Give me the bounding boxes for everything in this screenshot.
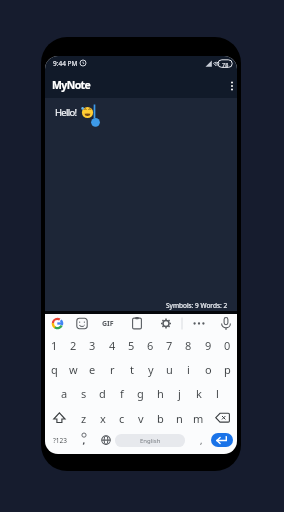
button[interactable]: 8 bbox=[179, 333, 198, 357]
button[interactable]: h bbox=[151, 381, 170, 405]
staticText: 6 bbox=[147, 338, 154, 353]
button[interactable]: x bbox=[93, 406, 112, 430]
staticText: Hello! bbox=[55, 106, 77, 119]
button[interactable]: y bbox=[141, 357, 160, 381]
button[interactable] bbox=[73, 314, 91, 333]
staticText: q bbox=[51, 362, 58, 377]
button[interactable]: k bbox=[189, 381, 208, 405]
button[interactable]: 9 bbox=[199, 333, 218, 357]
staticText: b bbox=[157, 411, 164, 426]
staticText: 4 bbox=[109, 338, 116, 353]
button[interactable] bbox=[128, 314, 146, 333]
button[interactable]: l bbox=[208, 381, 227, 405]
staticText: w bbox=[69, 362, 78, 377]
button[interactable]: q bbox=[45, 357, 64, 381]
button[interactable]: English bbox=[115, 434, 185, 447]
staticText: d bbox=[99, 386, 106, 401]
button[interactable]: c bbox=[112, 406, 131, 430]
staticText: u bbox=[166, 362, 173, 377]
staticText: e bbox=[89, 362, 96, 377]
button[interactable]: 7 bbox=[160, 333, 179, 357]
staticText: 9:44 PM bbox=[53, 59, 78, 68]
staticText: m bbox=[193, 411, 204, 426]
button[interactable]: o bbox=[199, 357, 218, 381]
button[interactable] bbox=[157, 314, 175, 333]
button[interactable] bbox=[49, 314, 67, 333]
staticText: z bbox=[81, 411, 87, 426]
button[interactable]: 4 bbox=[103, 333, 122, 357]
staticText: r bbox=[110, 362, 115, 377]
staticText: i bbox=[187, 362, 190, 377]
button[interactable]: , bbox=[192, 428, 211, 452]
button[interactable]: n bbox=[170, 406, 189, 430]
staticText: 3 bbox=[89, 338, 96, 353]
button[interactable]: r bbox=[103, 357, 122, 381]
staticText: MyNote bbox=[52, 78, 91, 92]
button[interactable]: e bbox=[83, 357, 102, 381]
button[interactable]: f bbox=[112, 381, 131, 405]
button[interactable]: j bbox=[170, 381, 189, 405]
staticText: y bbox=[148, 362, 154, 377]
staticText: 78 bbox=[222, 61, 229, 68]
button[interactable]: 5 bbox=[122, 333, 141, 357]
button[interactable]: p bbox=[218, 357, 237, 381]
button[interactable]: u bbox=[160, 357, 179, 381]
button[interactable]: ?123 bbox=[45, 428, 74, 452]
button[interactable] bbox=[45, 98, 237, 311]
button[interactable]: w bbox=[64, 357, 83, 381]
button[interactable]: b bbox=[151, 406, 170, 430]
staticText: g bbox=[137, 386, 144, 401]
button[interactable]: 3 bbox=[83, 333, 102, 357]
button[interactable]: g bbox=[131, 381, 150, 405]
button[interactable]: z bbox=[74, 406, 93, 430]
staticText: o bbox=[205, 362, 212, 377]
button[interactable]: 0 bbox=[218, 333, 237, 357]
button[interactable]: 6 bbox=[141, 333, 160, 357]
staticText: 2 bbox=[70, 338, 77, 353]
button[interactable]: 2 bbox=[64, 333, 83, 357]
staticText: j bbox=[178, 386, 181, 401]
staticText: 5 bbox=[128, 338, 135, 353]
staticText: l bbox=[216, 386, 219, 401]
staticText: 1 bbox=[51, 338, 58, 353]
button[interactable] bbox=[93, 428, 112, 452]
staticText: x bbox=[100, 411, 106, 426]
staticText: GIF bbox=[102, 319, 114, 329]
staticText: 9 bbox=[205, 338, 212, 353]
staticText: f bbox=[120, 386, 124, 401]
staticText: n bbox=[176, 411, 183, 426]
button[interactable] bbox=[99, 314, 117, 333]
button[interactable]: d bbox=[93, 381, 112, 405]
staticText: a bbox=[61, 386, 68, 401]
staticText: v bbox=[138, 411, 144, 426]
staticText: k bbox=[196, 386, 202, 401]
staticText: p bbox=[224, 362, 231, 377]
staticText: , bbox=[200, 434, 203, 446]
staticText: t bbox=[130, 362, 134, 377]
button[interactable]: t bbox=[122, 357, 141, 381]
staticText: 7 bbox=[166, 338, 173, 353]
button[interactable]: 1 bbox=[45, 333, 64, 357]
button[interactable]: v bbox=[131, 406, 150, 430]
staticText: 0 bbox=[224, 338, 231, 353]
button[interactable]: i bbox=[179, 357, 198, 381]
button[interactable] bbox=[45, 406, 74, 430]
staticText: 8 bbox=[185, 338, 192, 353]
button[interactable] bbox=[217, 314, 235, 333]
staticText: Symbols: 9 Words: 2 bbox=[166, 301, 228, 310]
button[interactable]: m bbox=[189, 406, 208, 430]
button[interactable]: a bbox=[55, 381, 74, 405]
button[interactable] bbox=[74, 428, 93, 452]
button[interactable]: GIF bbox=[99, 314, 117, 333]
button[interactable] bbox=[190, 314, 208, 333]
staticText: c bbox=[119, 411, 125, 426]
staticText: ?123 bbox=[53, 436, 67, 445]
button[interactable]: s bbox=[74, 381, 93, 405]
staticText: s bbox=[81, 386, 87, 401]
button[interactable] bbox=[211, 433, 233, 447]
staticText: English bbox=[140, 437, 161, 445]
staticText: h bbox=[157, 386, 164, 401]
button[interactable] bbox=[208, 406, 237, 430]
